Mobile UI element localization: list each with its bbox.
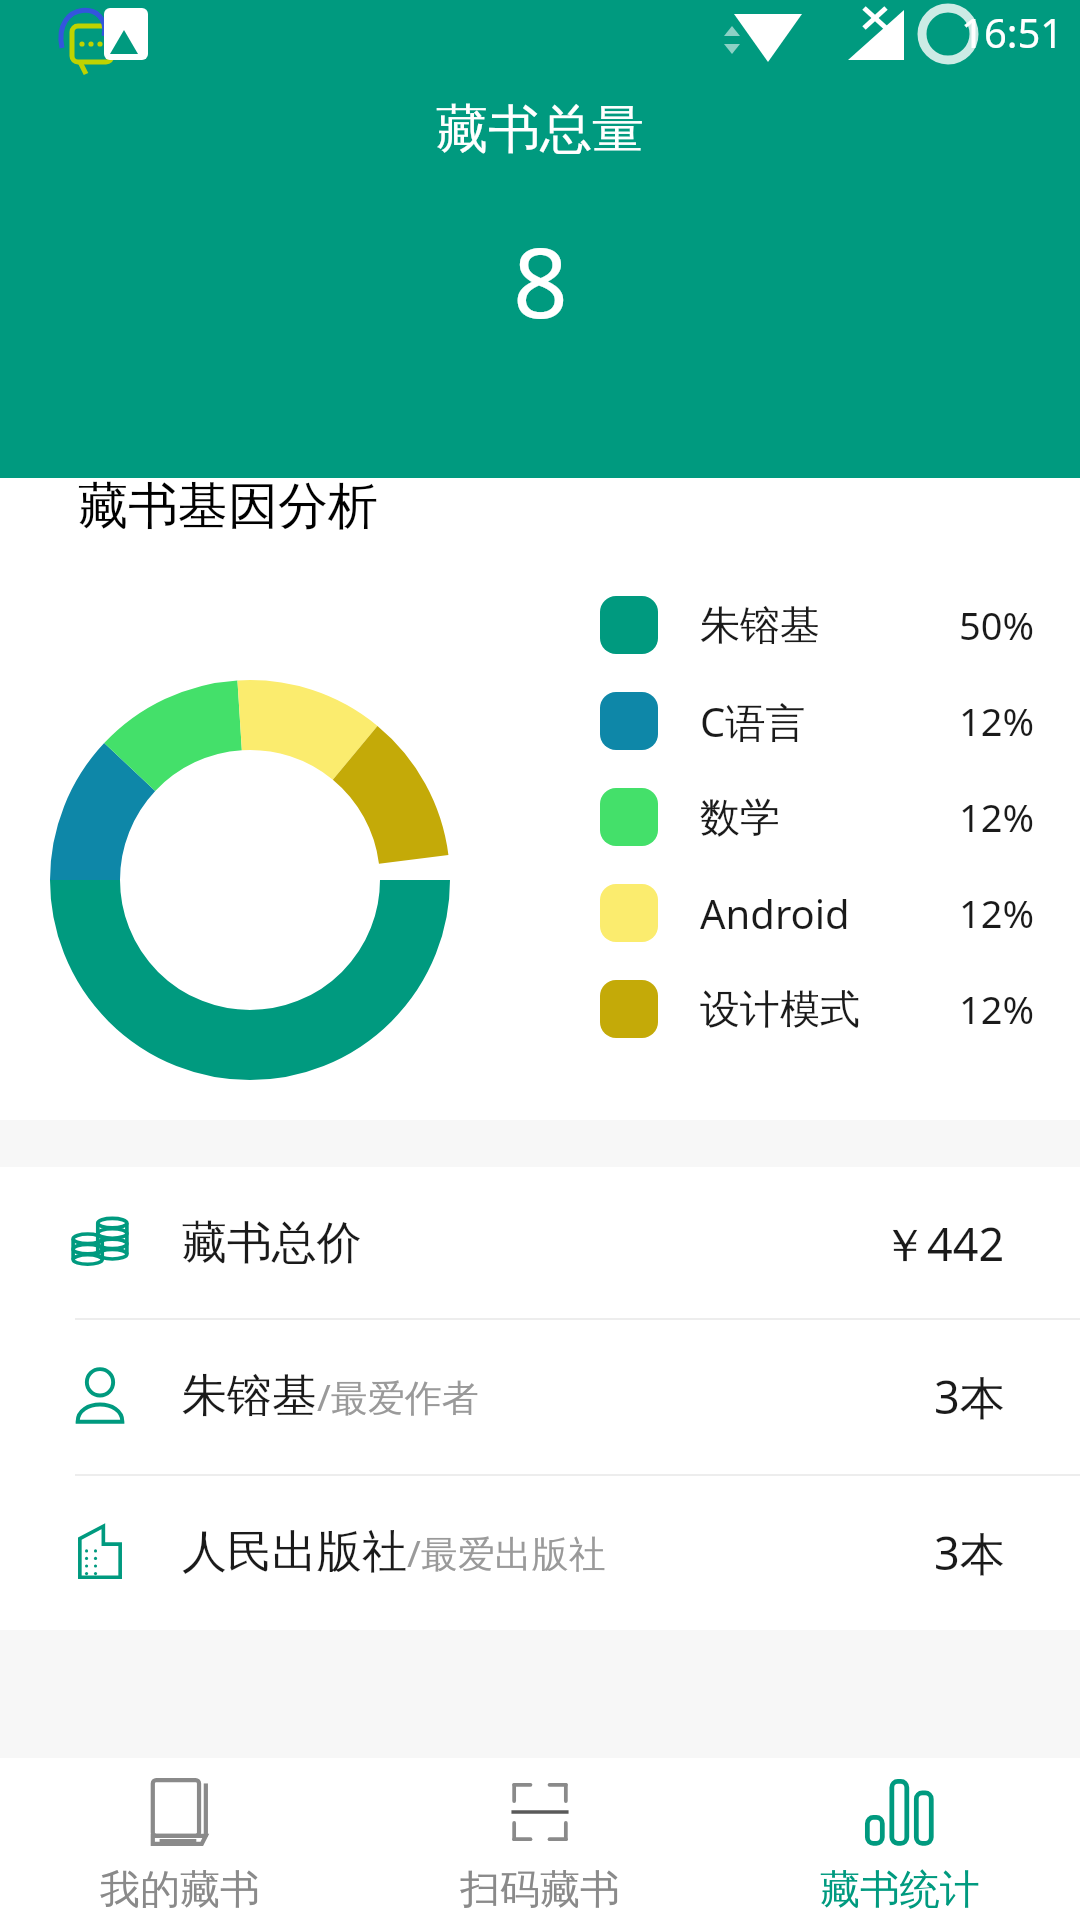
staticText: 12% xyxy=(959,887,1035,939)
staticText: 藏书总量 xyxy=(436,97,644,163)
staticText: 8 xyxy=(513,215,568,346)
button[interactable]: C语言 xyxy=(600,673,1035,769)
staticText: 设计模式 xyxy=(700,984,860,1034)
staticText: 朱镕基/最爱作者 xyxy=(182,1368,479,1425)
button[interactable]: 我的藏书 xyxy=(0,1758,360,1920)
button[interactable]: Android xyxy=(600,865,1035,961)
other: 扫码藏书 xyxy=(506,1778,574,1846)
staticText: 12% xyxy=(959,791,1035,843)
button[interactable]: 藏书统计 xyxy=(720,1758,1080,1920)
staticText: 我的藏书 xyxy=(100,1864,260,1914)
button[interactable]: 设计模式 xyxy=(600,961,1035,1057)
staticText: Android xyxy=(700,886,850,940)
staticText: 朱镕基 xyxy=(700,600,820,650)
staticText: 扫码藏书 xyxy=(460,1864,620,1914)
button[interactable]: 人民出版社/最爱出版社 xyxy=(0,1476,1080,1628)
button[interactable]: 朱镕基 xyxy=(600,577,1035,673)
button[interactable]: 朱镕基/最爱作者 xyxy=(0,1320,1080,1472)
staticText: 藏书统计 xyxy=(820,1864,980,1914)
staticText: 人民出版社/最爱出版社 xyxy=(182,1524,606,1581)
other: 我的藏书 xyxy=(146,1778,214,1846)
staticText: ￥442 xyxy=(882,1213,1005,1274)
staticText: 12% xyxy=(959,983,1035,1035)
staticText: 数学 xyxy=(700,792,780,842)
staticText: 12% xyxy=(959,695,1035,747)
button[interactable]: 数学 xyxy=(600,769,1035,865)
staticText: 藏书总价 xyxy=(182,1215,362,1272)
button[interactable]: 扫码藏书 xyxy=(360,1758,720,1920)
staticText: 50% xyxy=(959,599,1035,651)
button[interactable]: 藏书总价 xyxy=(0,1167,1080,1319)
staticText: 16:51 xyxy=(961,5,1064,59)
staticText: 藏书基因分析 xyxy=(78,475,378,538)
staticText: 3本 xyxy=(934,1366,1005,1427)
staticText: C语言 xyxy=(700,694,806,749)
other: 藏书统计 xyxy=(866,1778,934,1846)
staticText: 3本 xyxy=(934,1522,1005,1583)
